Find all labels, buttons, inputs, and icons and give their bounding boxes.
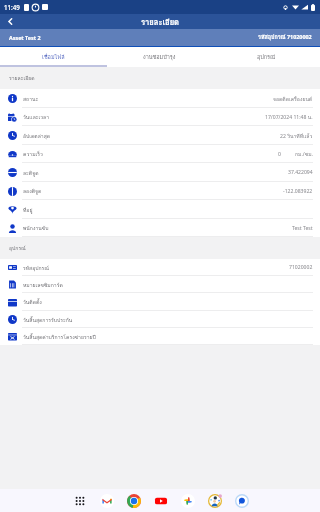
button[interactable]: Chrome — [120, 489, 147, 512]
staticText: สถานะ — [23, 95, 39, 103]
staticText: ละติจูด — [23, 169, 39, 177]
button[interactable]: สถานะ — [0, 89, 320, 108]
button[interactable]: งานซ่อมบำรุง — [106, 47, 213, 67]
button[interactable]: วันและเวลา — [0, 108, 320, 126]
staticText: อัปเดตล่าสุด — [23, 132, 51, 140]
button[interactable]: วันติดตั้ง — [0, 293, 320, 311]
staticText: วันสิ้นสุดการรับประกัน — [23, 316, 73, 324]
staticText: กม./ชม. — [295, 150, 313, 158]
button[interactable]: เชื่อมไฟล์ — [0, 47, 106, 67]
staticText: รหัสอุปกรณ์ 71020002 — [258, 33, 312, 42]
staticText: อุปกรณ์ — [9, 244, 26, 252]
staticText: Asset Test 2 — [9, 34, 41, 41]
staticText: จอดติดเครื่องยนต์ — [273, 95, 313, 103]
staticText: 11:49 — [4, 3, 20, 11]
button[interactable]: วันสิ้นสุดการรับประกัน — [0, 311, 320, 328]
staticText: 71020002 — [289, 264, 313, 271]
button[interactable]: Photos — [174, 489, 201, 512]
staticText: 37.422094 — [288, 169, 313, 176]
button[interactable]: Gmail — [93, 489, 120, 512]
button[interactable]: อัปเดตล่าสุด — [0, 126, 320, 145]
staticText: วันและเวลา — [23, 113, 50, 121]
button[interactable]: วันสิ้นสุดค่าบริการโครงข่ายรายปี — [0, 328, 320, 345]
button[interactable]: Back — [2, 14, 18, 29]
button[interactable]: Apps — [66, 489, 93, 512]
button[interactable]: หมายเลขซิมการ์ด — [0, 276, 320, 293]
staticText: รายละเอียด — [9, 74, 35, 82]
staticText: เชื่อมไฟล์ — [42, 53, 65, 62]
staticText: รหัสอุปกรณ์ — [23, 264, 50, 272]
staticText: 17/07/2024 11:48 น. — [265, 113, 313, 121]
button[interactable]: ที่อยู่ — [0, 200, 320, 219]
staticText: วันสิ้นสุดค่าบริการโครงข่ายรายปี — [23, 333, 96, 341]
staticText: 22 วินาทีที่แล้ว — [280, 132, 313, 140]
staticText: ลองติจูด — [23, 187, 42, 195]
staticText: งานซ่อมบำรุง — [143, 53, 176, 62]
staticText: พนักงานขับ — [23, 224, 49, 232]
staticText: ที่อยู่ — [23, 206, 33, 214]
staticText: -122.083922 — [283, 188, 313, 195]
button[interactable]: Messages — [228, 489, 255, 512]
staticText: หมายเลขซิมการ์ด — [23, 281, 63, 289]
staticText: 0 — [278, 151, 281, 158]
staticText: วันติดตั้ง — [23, 298, 42, 306]
button[interactable]: YouTube — [147, 489, 174, 512]
button[interactable]: Profile — [201, 489, 228, 512]
staticText: Test Test — [292, 225, 313, 232]
staticText: ความเร็ว — [23, 150, 43, 158]
button[interactable]: รหัสอุปกรณ์ — [0, 259, 320, 276]
staticText: รายละเอียด — [141, 16, 180, 28]
button[interactable]: ความเร็ว — [0, 145, 320, 163]
button[interactable]: ลองติจูด — [0, 182, 320, 200]
button[interactable]: อุปกรณ์ — [213, 47, 320, 67]
button[interactable]: ละติจูด — [0, 163, 320, 182]
button[interactable]: พนักงานขับ — [0, 219, 320, 237]
staticText: อุปกรณ์ — [257, 53, 276, 62]
